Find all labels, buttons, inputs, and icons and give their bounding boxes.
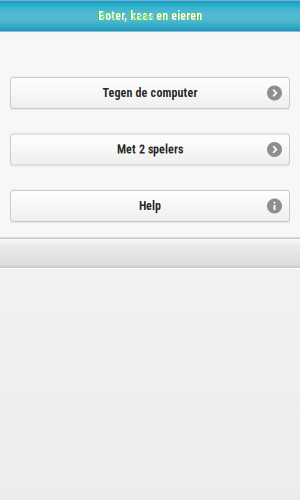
staticText: Help: [139, 199, 161, 213]
button[interactable]: Met 2 spelers: [10, 133, 290, 165]
button[interactable]: Tegen de computer: [10, 77, 290, 109]
staticText: Boter, kaas en eieren: [98, 9, 202, 23]
button[interactable]: Help: [10, 190, 290, 222]
staticText: Tegen de computer: [102, 86, 197, 100]
staticText: Met 2 spelers: [117, 142, 183, 157]
